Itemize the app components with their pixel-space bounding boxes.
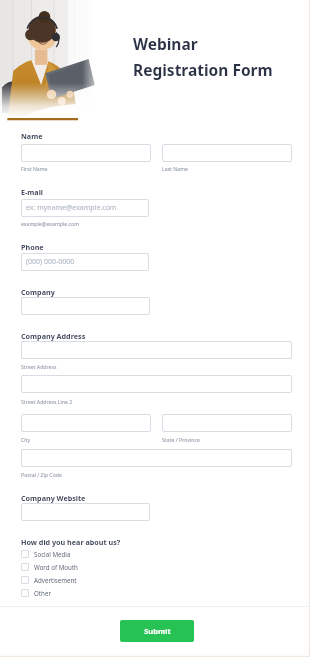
staticText: Postal / Zip Code [21,471,62,478]
staticText: Word of Mouth [34,563,78,571]
button[interactable] [21,297,150,315]
staticText: City [21,436,31,443]
button[interactable]: Submit [120,620,194,642]
staticText: Street Address [21,363,57,370]
staticText: Company Website [21,493,86,503]
button[interactable] [21,414,151,432]
staticText: State / Province [162,436,200,443]
staticText: Submit [144,626,171,636]
button[interactable] [21,449,292,467]
button[interactable] [162,144,292,162]
staticText: example@example.com [21,220,80,227]
staticText: Webinar [133,33,198,54]
other: Webinar presenter photo [0,0,103,118]
staticText: Company Address [21,331,86,341]
staticText: Name [21,131,43,141]
staticText: Advertisement [34,576,77,584]
staticText: Other [34,589,51,597]
button[interactable]: (000) 000-0000 [21,253,149,271]
button[interactable] [21,503,150,521]
staticText: Last Name [162,165,188,172]
button[interactable]: Other [21,587,51,598]
button[interactable] [21,375,292,393]
button[interactable] [21,144,151,162]
button[interactable]: Advertisement [21,574,77,585]
button[interactable] [21,341,292,359]
button[interactable] [162,414,292,432]
staticText: Phone [21,242,44,252]
button[interactable]: ex: myname@example.com [21,199,149,217]
staticText: Registration Form [133,59,273,80]
staticText: First Name [21,165,48,172]
staticText: E-mail [21,187,43,197]
staticText: Street Address Line 2 [21,398,73,405]
button[interactable]: Word of Mouth [21,561,78,572]
staticText: How did you hear about us? [21,537,121,547]
staticText: ex: myname@example.com [26,203,117,213]
staticText: Company [21,287,55,297]
staticText: Social Media [34,550,71,558]
staticText: (000) 000-0000 [26,257,75,267]
button[interactable]: Social Media [21,548,71,559]
